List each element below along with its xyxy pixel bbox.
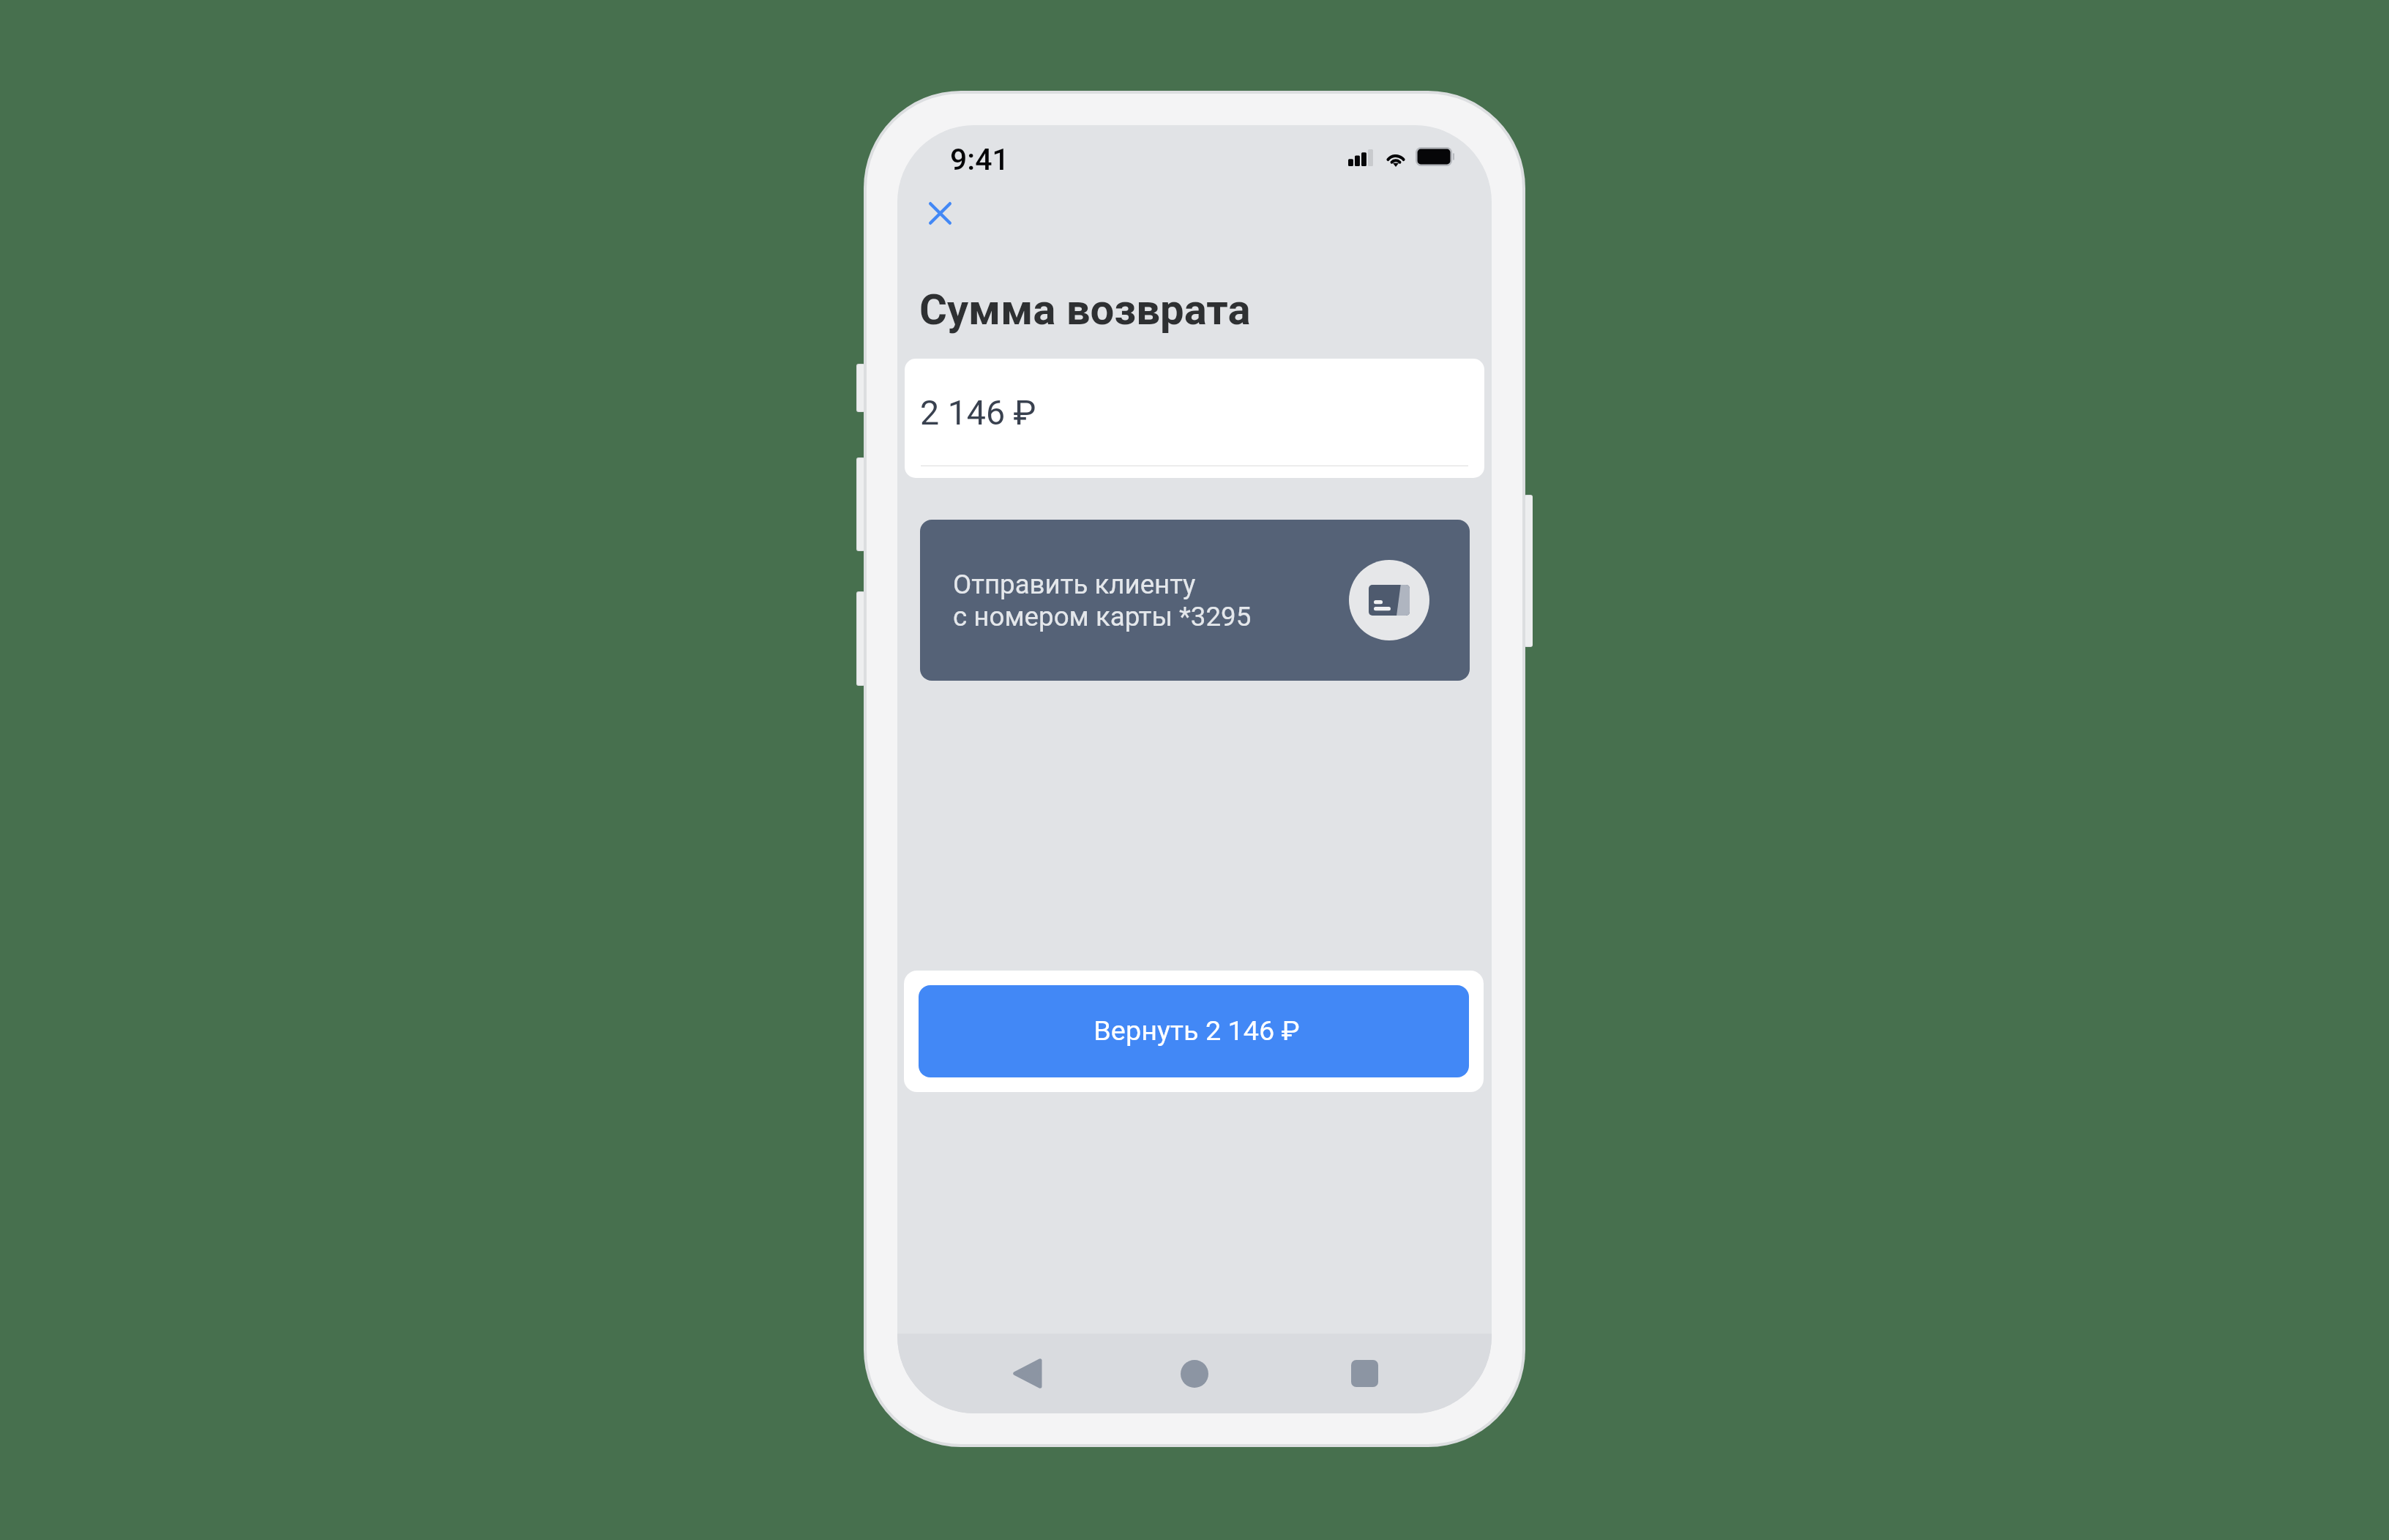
staticText: 2 146 ₽ [920,393,1036,433]
button[interactable]: Close [907,180,973,247]
button[interactable]: Home [1162,1345,1227,1402]
staticText: 9:41 [950,142,1009,177]
button[interactable]: Отправить клиенту с номером карты *3295 [920,520,1470,681]
button[interactable]: Back [995,1345,1059,1402]
button[interactable]: Вернуть 2 146 ₽ [919,985,1469,1077]
staticText: Вернуть 2 146 ₽ [1093,1014,1300,1047]
staticText: Отправить клиенту с номером карты *3295 [953,569,1252,632]
button[interactable]: 2 146 ₽ [905,359,1484,478]
staticText: Сумма возврата [919,285,1251,334]
button[interactable]: Recent apps [1332,1345,1397,1402]
